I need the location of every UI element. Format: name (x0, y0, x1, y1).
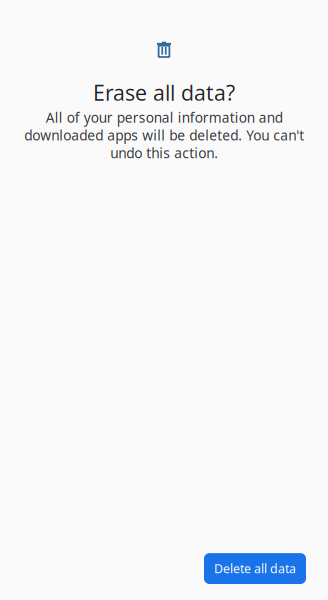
staticText: Delete all data (214, 560, 296, 577)
staticText: Erase all data? (93, 78, 235, 107)
button[interactable]: Delete all data (204, 553, 306, 584)
staticText: All of your personal information and dow… (24, 108, 304, 162)
